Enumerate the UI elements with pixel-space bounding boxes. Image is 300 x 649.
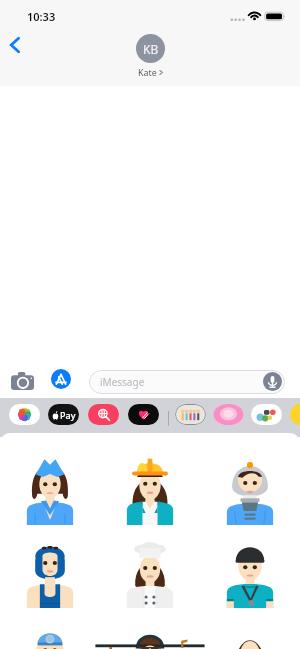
button[interactable] (200, 541, 300, 608)
button[interactable] (200, 458, 300, 525)
button[interactable]: Search (88, 404, 119, 425)
button[interactable]: Dictate (263, 372, 282, 391)
staticText: Kate (138, 66, 157, 78)
staticText: KB (143, 41, 159, 57)
staticText: 10:33 (27, 9, 56, 24)
button[interactable]: Fitness (128, 404, 159, 425)
button[interactable] (100, 458, 200, 525)
button[interactable]: More (290, 404, 300, 425)
button[interactable]: Back (2, 32, 28, 58)
button[interactable]: Apple Pay (48, 404, 79, 425)
button[interactable]: App Store (51, 369, 71, 389)
button[interactable]: People (175, 404, 206, 425)
button[interactable] (0, 458, 100, 525)
button[interactable] (100, 541, 200, 608)
button[interactable]: Memoji (251, 404, 282, 425)
button[interactable]: iMessage (89, 370, 285, 394)
staticText: Pay (60, 409, 76, 421)
button[interactable]: Camera (11, 372, 34, 390)
staticText: iMessage (100, 375, 145, 389)
button[interactable]: Photos (9, 404, 40, 425)
button[interactable] (200, 628, 300, 649)
button[interactable]: Stickers (213, 404, 244, 425)
button[interactable] (0, 541, 100, 608)
button[interactable] (100, 628, 200, 649)
button[interactable] (0, 628, 100, 649)
button[interactable]: KB (136, 34, 165, 78)
